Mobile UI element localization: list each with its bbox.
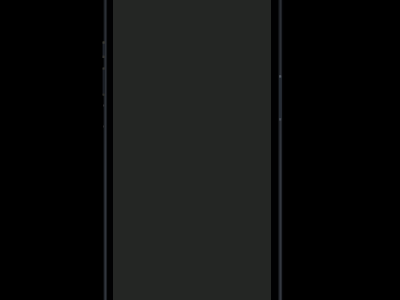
button[interactable]: Volume up: [101, 41, 107, 59]
button[interactable]: Power: [278, 75, 284, 121]
button[interactable]: Volume down: [101, 67, 107, 96]
